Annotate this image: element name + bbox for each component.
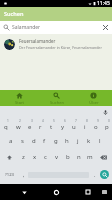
button[interactable]: Home	[49, 185, 63, 199]
staticText: 2	[19, 119, 21, 123]
button[interactable]: Hide keyboard	[17, 185, 31, 199]
button[interactable]: ?123	[0, 165, 20, 184]
staticText: ?123	[5, 172, 15, 178]
staticText: 7	[75, 119, 77, 123]
staticText: Der Feuersalamander in Kürze, Feuersalam…	[19, 45, 102, 50]
staticText: x	[33, 153, 37, 161]
staticText: y	[61, 123, 65, 131]
button[interactable]: 4	[35, 117, 46, 133]
button[interactable]: j	[72, 133, 83, 149]
button[interactable]: m	[84, 149, 95, 165]
button[interactable]: k	[83, 133, 94, 149]
button[interactable]: Feuersalamander	[0, 34, 112, 54]
button[interactable]: Voice input	[100, 107, 110, 117]
button[interactable]: b	[62, 149, 73, 165]
button[interactable]: Suchen	[38, 90, 75, 106]
button[interactable]: Search	[100, 170, 109, 179]
staticText: j	[77, 137, 79, 145]
staticText: a	[9, 137, 13, 145]
button[interactable]: 6	[57, 117, 68, 133]
button[interactable]: 2	[12, 117, 24, 133]
staticText: 6	[64, 119, 66, 123]
button[interactable]: x	[29, 149, 40, 165]
staticText: z	[22, 153, 25, 161]
button[interactable]: 1	[0, 117, 12, 133]
staticText: Suchen	[50, 100, 64, 105]
button[interactable]: Switch keyboard	[98, 186, 110, 198]
button[interactable]: n	[73, 149, 84, 165]
staticText: s	[21, 137, 24, 145]
button[interactable]: Shift	[0, 149, 18, 165]
staticText: f	[43, 137, 46, 145]
staticText: k	[87, 137, 91, 145]
staticText: 4	[42, 119, 44, 123]
button[interactable]: Recent apps	[81, 185, 95, 199]
staticText: d	[32, 137, 36, 145]
button[interactable]: v	[51, 149, 62, 165]
staticText: 0	[108, 119, 110, 123]
staticText: 5	[53, 119, 55, 123]
staticText: 8	[86, 119, 88, 123]
staticText: e	[28, 123, 32, 131]
staticText: m	[87, 153, 93, 161]
staticText: Feuersalamander	[19, 38, 56, 44]
button[interactable]: l	[94, 133, 105, 149]
staticText: 9	[97, 119, 99, 123]
button[interactable]: 7	[68, 117, 79, 133]
staticText: ,	[23, 171, 25, 178]
button[interactable]: Backspace	[95, 149, 112, 165]
button[interactable]: z	[18, 149, 29, 165]
staticText: v	[55, 153, 59, 161]
staticText: c	[44, 153, 47, 161]
button[interactable]: s	[17, 133, 28, 149]
button[interactable]: g	[50, 133, 61, 149]
staticText: r	[39, 123, 42, 131]
button[interactable]: 5	[46, 117, 57, 133]
staticText: 3	[31, 119, 33, 123]
staticText: Suchen	[4, 10, 24, 18]
button[interactable]: 0	[101, 117, 112, 133]
staticText: 1	[7, 119, 9, 123]
staticText: Salamander	[12, 24, 41, 31]
button[interactable]: a	[5, 133, 17, 149]
button[interactable]: 8	[79, 117, 90, 133]
button[interactable]: f	[39, 133, 50, 149]
button[interactable]: Start	[0, 90, 38, 106]
staticText: w	[16, 123, 21, 131]
staticText: Über	[89, 100, 99, 105]
button[interactable]: Über	[75, 90, 112, 106]
button[interactable]: h	[61, 133, 72, 149]
staticText: t	[50, 123, 53, 131]
staticText: p	[105, 123, 109, 131]
button[interactable]: 3	[24, 117, 35, 133]
staticText: 11:45	[97, 0, 110, 7]
staticText: b	[66, 153, 70, 161]
button[interactable]: .	[89, 165, 100, 184]
staticText: i	[84, 123, 86, 131]
button[interactable]: Clear search	[99, 21, 112, 34]
staticText: Start	[15, 100, 24, 105]
staticText: h	[65, 137, 69, 145]
staticText: q	[4, 123, 8, 131]
staticText: u	[72, 123, 76, 131]
staticText: .	[94, 171, 96, 178]
button[interactable]: d	[28, 133, 39, 149]
staticText: n	[77, 153, 81, 161]
button[interactable]: ,	[20, 165, 28, 184]
staticText: g	[54, 137, 58, 145]
staticText: l	[99, 137, 101, 145]
button[interactable]: c	[40, 149, 51, 165]
button[interactable]: 9	[90, 117, 101, 133]
staticText: o	[94, 123, 98, 131]
